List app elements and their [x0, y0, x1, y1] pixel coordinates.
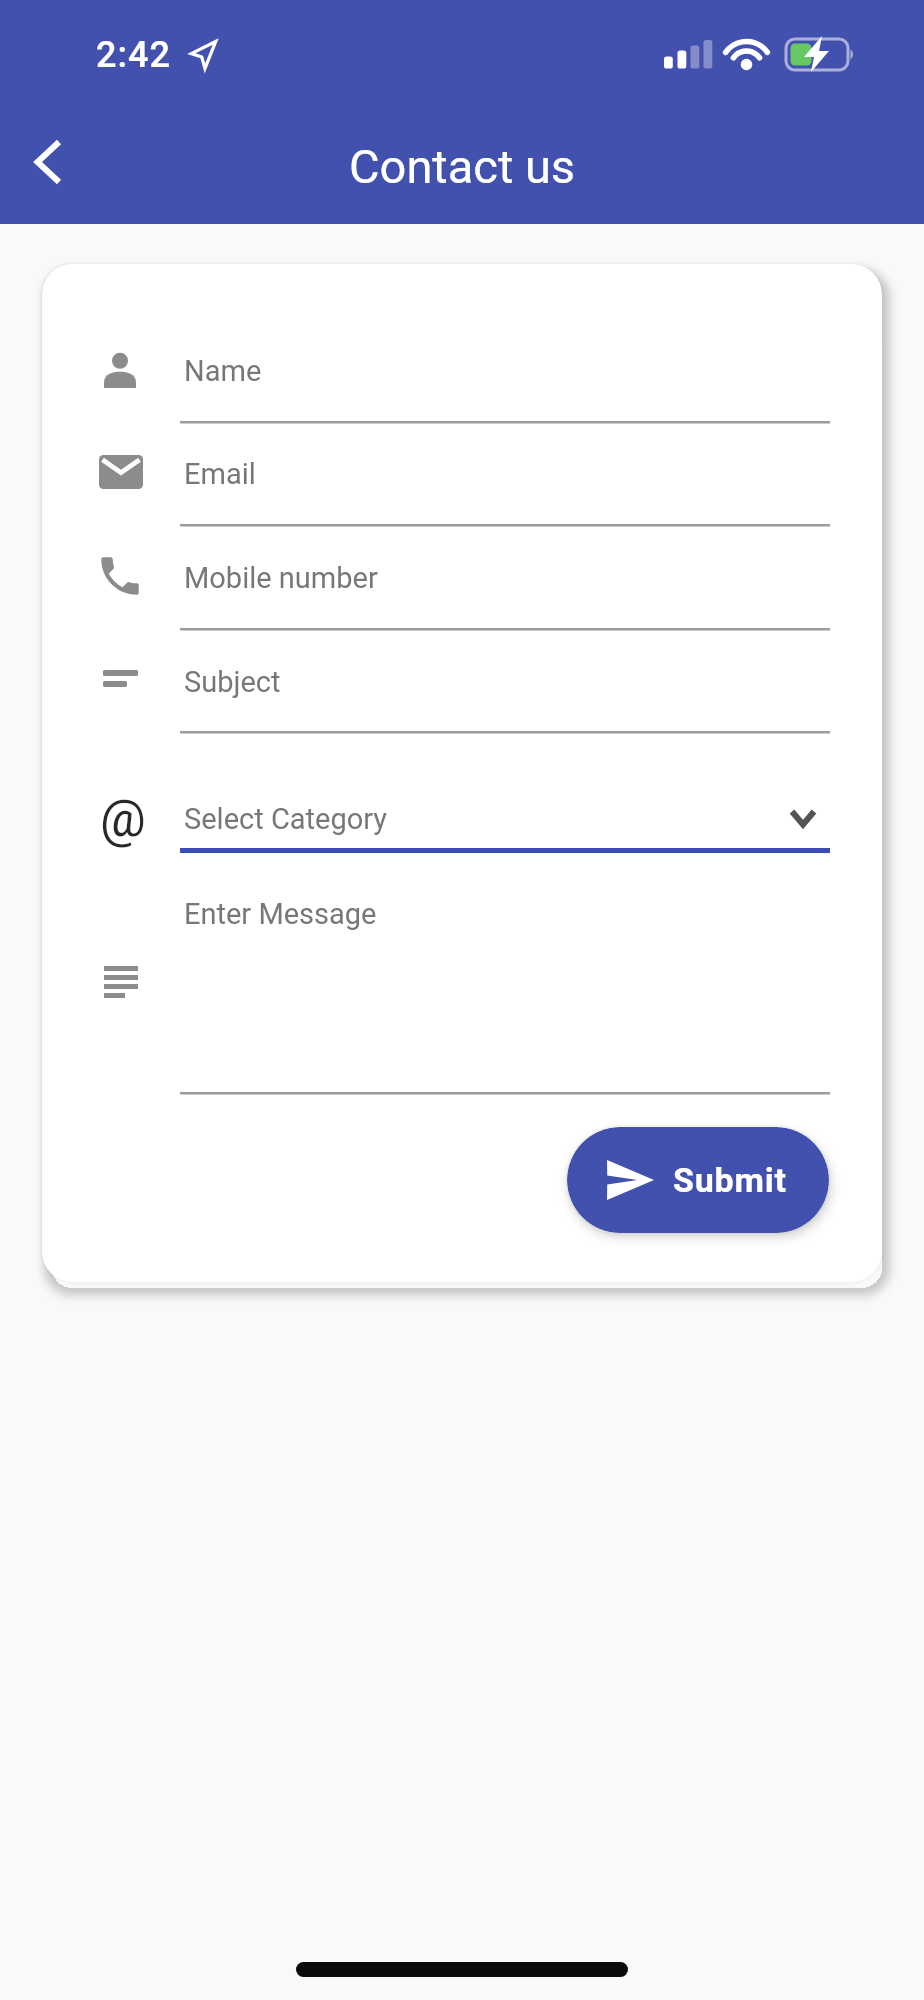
staticText: @: [100, 789, 146, 849]
staticText: Email: [184, 457, 256, 491]
button[interactable]: Email: [180, 455, 740, 493]
button[interactable]: Mobile number: [180, 559, 740, 597]
button[interactable]: Submit: [567, 1127, 829, 1233]
staticText: 2:42: [96, 34, 171, 76]
button[interactable]: Select Category: [180, 788, 830, 850]
staticText: Contact us: [349, 139, 576, 194]
button[interactable]: Enter Message: [180, 884, 830, 1094]
staticText: Mobile number: [184, 561, 378, 595]
button[interactable]: Name: [180, 352, 740, 390]
button[interactable]: Subject: [180, 663, 740, 701]
staticText: Name: [184, 354, 262, 388]
staticText: Subject: [184, 665, 281, 699]
staticText: Enter Message: [184, 897, 377, 931]
staticText: Select Category: [184, 802, 388, 836]
staticText: Submit: [673, 1160, 787, 1200]
button[interactable]: [16, 130, 80, 194]
